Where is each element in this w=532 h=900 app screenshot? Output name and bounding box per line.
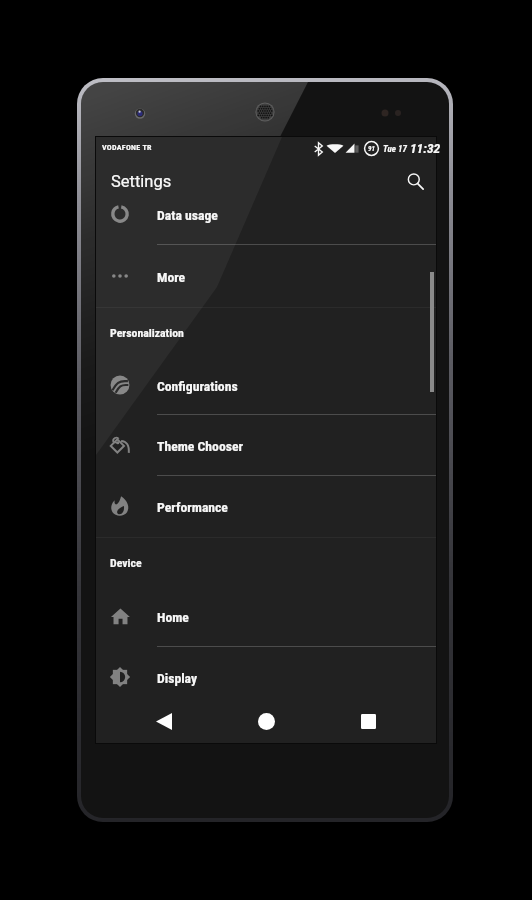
button[interactable]: Display — [96, 646, 436, 707]
staticText: Device — [110, 556, 142, 570]
staticText: More — [157, 269, 186, 285]
staticText: Theme Chooser — [157, 438, 244, 454]
staticText: 11:32 — [410, 140, 441, 156]
button[interactable]: Home — [238, 700, 294, 743]
button[interactable]: Search — [398, 164, 432, 198]
staticText: Home — [157, 609, 189, 625]
staticText: Configurations — [157, 378, 238, 394]
staticText: Tue 17 — [383, 144, 407, 155]
staticText: Performance — [157, 499, 228, 515]
button[interactable]: Configurations — [96, 355, 436, 414]
staticText: Data usage — [157, 207, 218, 223]
button[interactable]: Home — [96, 585, 436, 646]
button[interactable]: More — [96, 244, 436, 307]
staticText: Settings — [111, 172, 172, 191]
button[interactable]: Recent apps — [340, 700, 396, 743]
staticText: 91 — [368, 145, 375, 153]
button[interactable]: Back — [136, 700, 192, 743]
button[interactable]: Performance — [96, 475, 436, 537]
staticText: Personalization — [110, 326, 184, 340]
button[interactable]: Theme Chooser — [96, 414, 436, 475]
staticText: VODAFONE TR — [102, 143, 152, 152]
button[interactable]: Data usage — [96, 183, 436, 244]
staticText: Display — [157, 670, 198, 686]
